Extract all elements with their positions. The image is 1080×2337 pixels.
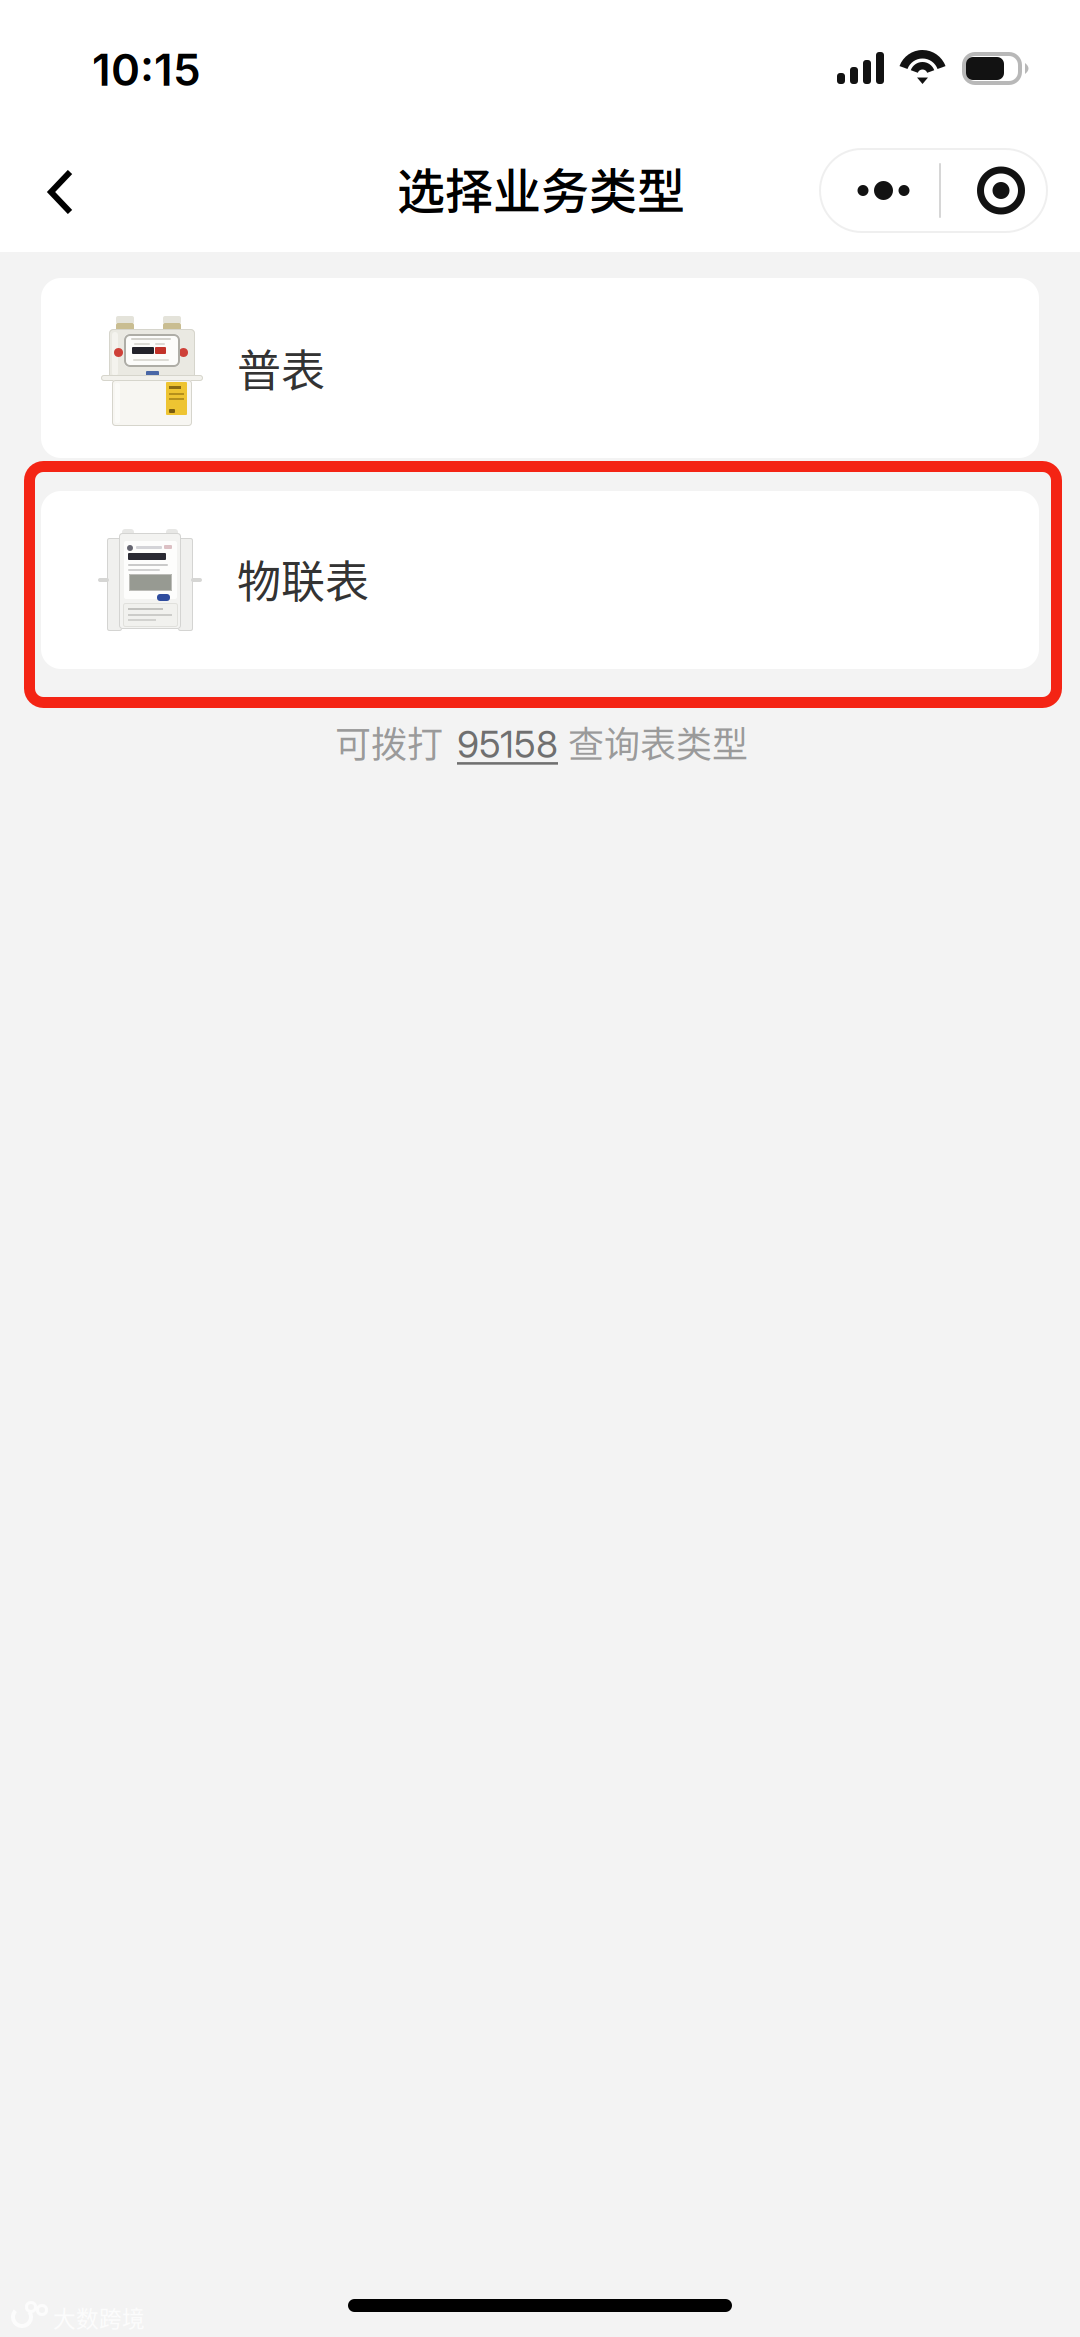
staticText: 可拨打 (335, 716, 443, 768)
staticText: 10:15 (92, 43, 201, 96)
staticText: 大数跨境 (53, 2301, 145, 2334)
button[interactable]: More options; close mini program (819, 148, 1048, 233)
staticText: 物联表 (237, 547, 369, 611)
button[interactable]: 95158 (457, 722, 558, 767)
staticText: 普表 (237, 336, 325, 400)
button[interactable]: Back (14, 146, 106, 238)
staticText: 选择业务类型 (397, 153, 685, 222)
staticText: 95158 (457, 722, 558, 767)
button[interactable]: 物联表 (41, 491, 1039, 669)
button[interactable]: 普表 (41, 278, 1039, 458)
staticText: 查询表类型 (568, 716, 748, 768)
